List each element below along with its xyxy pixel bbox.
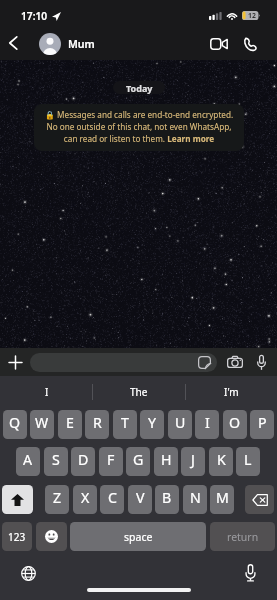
- staticText: N: [190, 488, 201, 507]
- staticText: space: [124, 530, 153, 544]
- button[interactable]: Emoji: [36, 522, 67, 551]
- staticText: A: [23, 450, 33, 469]
- button[interactable]: J: [181, 447, 205, 476]
- staticText: I'm: [224, 385, 239, 399]
- staticText: I: [45, 385, 49, 399]
- staticText: D: [78, 450, 89, 469]
- staticText: 🔒 Messages and calls are end-to-end encr…: [41, 109, 237, 144]
- button[interactable]: K: [209, 447, 233, 476]
- staticText: E: [66, 413, 74, 432]
- button[interactable]: return: [210, 522, 275, 551]
- staticText: V: [136, 488, 145, 507]
- staticText: 12: [248, 11, 256, 20]
- button[interactable]: L: [236, 447, 260, 476]
- button[interactable]: The: [93, 376, 185, 408]
- button[interactable]: I: [195, 410, 219, 439]
- button[interactable]: R: [85, 410, 109, 439]
- button[interactable]: T: [113, 410, 137, 439]
- button[interactable]: Voice message: [250, 351, 272, 373]
- button[interactable]: 123: [2, 522, 32, 551]
- button[interactable]: Attach: [4, 351, 26, 373]
- staticText: S: [52, 450, 60, 469]
- button[interactable]: N: [183, 485, 207, 514]
- staticText: M: [216, 488, 229, 507]
- button[interactable]: Camera: [224, 351, 246, 373]
- staticText: Mum: [68, 37, 95, 51]
- staticText: I: [205, 413, 210, 432]
- staticText: B: [162, 488, 172, 507]
- button[interactable]: Y: [140, 410, 164, 439]
- staticText: J: [191, 450, 195, 469]
- button[interactable]: Dictation: [238, 561, 262, 585]
- button[interactable]: 🔒 Messages and calls are end-to-end encr…: [34, 104, 244, 151]
- button[interactable]: Video call: [207, 32, 231, 56]
- staticText: 17:10: [21, 9, 48, 23]
- button[interactable]: C: [100, 485, 124, 514]
- button[interactable]: A: [16, 447, 40, 476]
- staticText: L: [244, 450, 252, 469]
- button[interactable]: U: [168, 410, 192, 439]
- staticText: Q: [9, 413, 21, 432]
- staticText: H: [161, 450, 172, 469]
- button[interactable]: E: [58, 410, 82, 439]
- staticText: T: [121, 413, 129, 432]
- button[interactable]: B: [155, 485, 179, 514]
- staticText: R: [93, 413, 102, 432]
- staticText: G: [133, 450, 144, 469]
- button[interactable]: S: [44, 447, 68, 476]
- staticText: C: [108, 488, 117, 507]
- button[interactable]: Switch keyboard: [16, 561, 40, 585]
- other: Sticker: [198, 356, 211, 369]
- staticText: X: [81, 488, 90, 507]
- staticText: U: [175, 413, 186, 432]
- button[interactable]: V: [128, 485, 152, 514]
- button[interactable]: G: [126, 447, 150, 476]
- staticText: F: [107, 450, 115, 469]
- button[interactable]: W: [30, 410, 54, 439]
- button[interactable]: Q: [3, 410, 27, 439]
- button[interactable]: P: [250, 410, 274, 439]
- staticText: Today: [126, 82, 153, 94]
- staticText: 123: [8, 530, 26, 544]
- button[interactable]: Backspace: [245, 485, 274, 514]
- staticText: O: [229, 413, 241, 432]
- button[interactable]: Sticker: [30, 353, 217, 372]
- button[interactable]: I: [0, 376, 93, 408]
- button[interactable]: space: [70, 522, 206, 551]
- button[interactable]: Z: [45, 485, 69, 514]
- button[interactable]: Back: [2, 32, 24, 54]
- button[interactable]: X: [73, 485, 97, 514]
- button[interactable]: D: [71, 447, 95, 476]
- button[interactable]: Shift: [2, 485, 33, 514]
- staticText: K: [217, 450, 226, 469]
- button[interactable]: Mum: [39, 33, 95, 55]
- button[interactable]: F: [99, 447, 123, 476]
- button[interactable]: H: [154, 447, 178, 476]
- staticText: Y: [148, 413, 157, 432]
- staticText: return: [227, 530, 259, 544]
- button[interactable]: Today: [113, 81, 165, 94]
- staticText: The: [130, 385, 148, 399]
- staticText: P: [258, 413, 267, 432]
- staticText: W: [35, 413, 49, 432]
- staticText: Z: [53, 488, 62, 507]
- button[interactable]: O: [223, 410, 247, 439]
- button[interactable]: M: [210, 485, 234, 514]
- button[interactable]: I'm: [185, 376, 277, 408]
- button[interactable]: Voice call: [238, 32, 262, 56]
